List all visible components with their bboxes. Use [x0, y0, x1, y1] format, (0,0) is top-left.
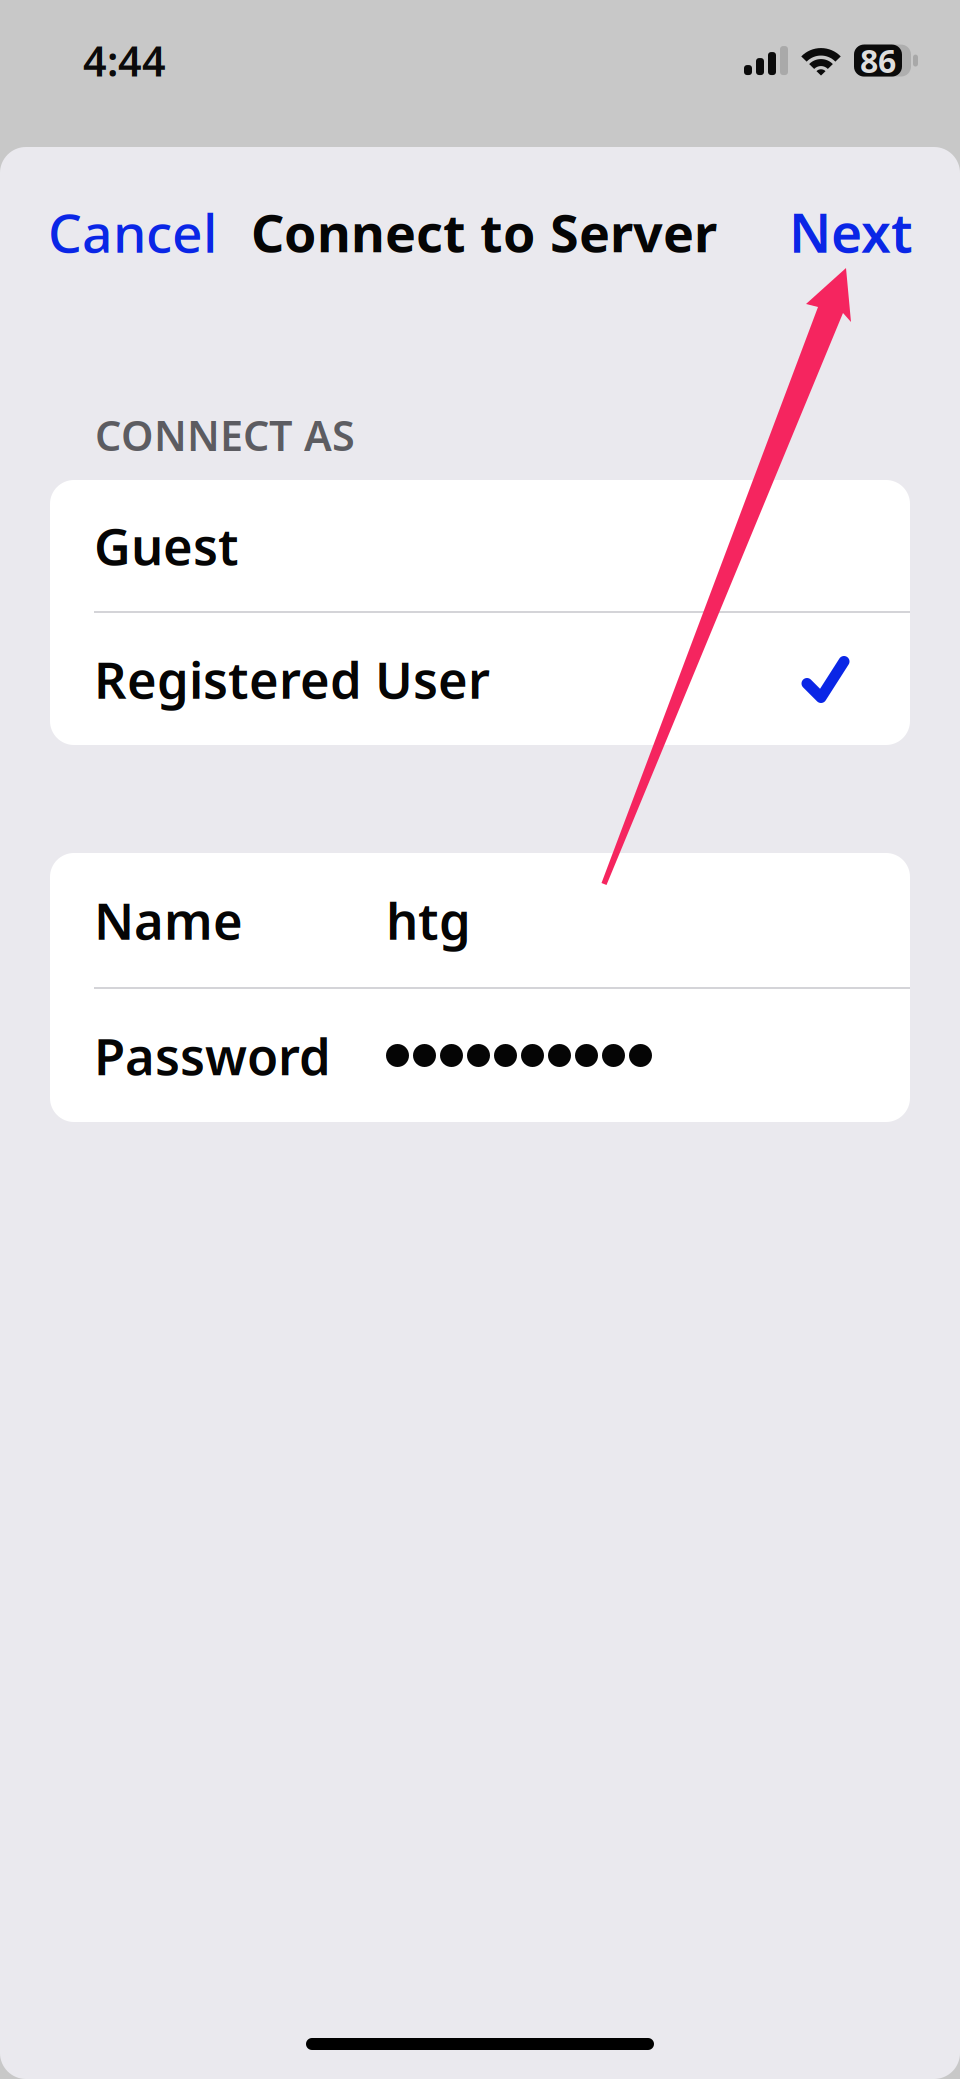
button[interactable]: Cancel — [48, 184, 217, 280]
staticText: Guest — [94, 512, 239, 579]
staticText: Registered User — [94, 645, 490, 713]
staticText: htg — [386, 886, 471, 954]
button[interactable]: Password — [50, 989, 910, 1122]
staticText: Password — [94, 1022, 331, 1089]
staticText: 4:44 — [83, 33, 166, 88]
staticText: CONNECT AS — [95, 408, 355, 462]
staticText: Connect to Server — [251, 197, 717, 267]
staticText: Cancel — [48, 197, 217, 267]
button[interactable]: Guest — [50, 480, 910, 611]
button[interactable]: Registered User — [50, 613, 910, 745]
staticText: Next — [789, 197, 913, 267]
staticText: 86 — [860, 39, 896, 82]
button[interactable]: Name — [50, 853, 910, 987]
button[interactable]: Next — [789, 184, 913, 280]
staticText: Name — [94, 886, 243, 954]
